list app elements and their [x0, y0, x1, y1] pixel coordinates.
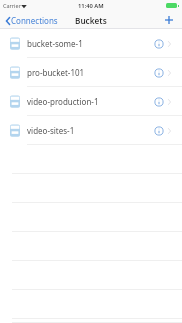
button[interactable]: video-production-1 — [0, 87, 182, 116]
staticText: Connections — [11, 15, 58, 26]
button[interactable]: Info — [153, 125, 165, 137]
staticText: 11:40 AM — [78, 2, 104, 10]
staticText: Buckets — [75, 15, 107, 26]
button[interactable]: Info — [153, 96, 165, 108]
button[interactable]: video-sites-1 — [0, 116, 182, 145]
staticText: pro-bucket-101 — [27, 67, 85, 78]
button[interactable]: Info — [153, 38, 165, 50]
staticText: Carrier — [3, 2, 21, 9]
button[interactable]: Connections — [0, 13, 63, 28]
button[interactable]: Info — [153, 67, 165, 79]
staticText: bucket-some-1 — [27, 38, 83, 49]
button[interactable]: pro-bucket-101 — [0, 58, 182, 87]
staticText: video-sites-1 — [27, 125, 75, 136]
staticText: video-production-1 — [27, 96, 99, 107]
button[interactable]: Add bucket — [159, 12, 182, 28]
button[interactable]: bucket-some-1 — [0, 29, 182, 58]
